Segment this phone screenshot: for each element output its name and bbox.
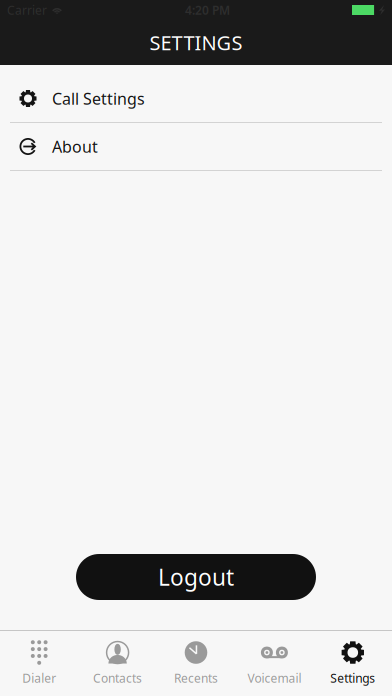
button[interactable]: Dialer	[0, 631, 78, 696]
staticText: Recents	[174, 670, 218, 686]
staticText: Logout	[158, 562, 234, 592]
staticText: SETTINGS	[149, 29, 242, 56]
button[interactable]: Logout	[76, 554, 316, 600]
button[interactable]: Settings	[314, 631, 392, 696]
button[interactable]: Contacts	[78, 631, 157, 696]
staticText: 4:20 PM	[185, 2, 230, 18]
button[interactable]: Recents	[157, 631, 235, 696]
button[interactable]: Call Settings	[0, 75, 392, 123]
staticText: Dialer	[22, 670, 56, 686]
staticText: About	[52, 136, 98, 157]
staticText: Settings	[330, 670, 375, 686]
staticText: Carrier	[7, 2, 47, 18]
staticText: Contacts	[93, 670, 142, 686]
button[interactable]: Voicemail	[235, 631, 314, 696]
button[interactable]: About	[0, 123, 392, 171]
staticText: Voicemail	[247, 670, 301, 686]
staticText: Call Settings	[52, 88, 145, 109]
